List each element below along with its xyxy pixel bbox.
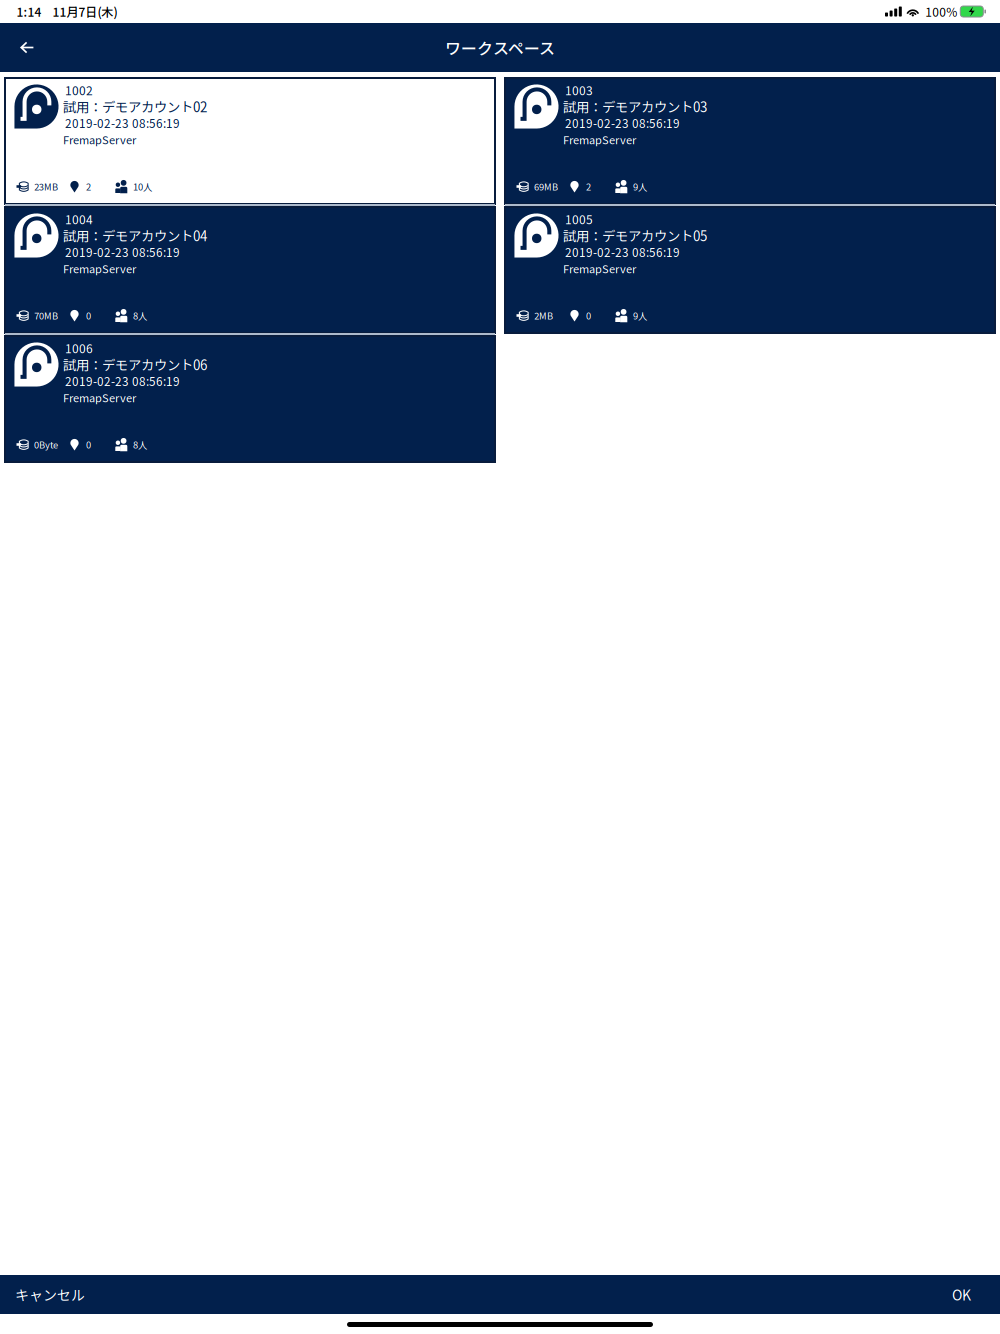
staticText: 0 [86,438,91,451]
staticText: FremapServer [563,260,636,276]
staticText: 1003 [565,81,593,99]
button[interactable]: Back [0,23,54,72]
staticText: 0Byte [34,438,58,451]
staticText: 試用：デモアカウント03 [563,97,707,116]
staticText: 2MB [534,309,553,322]
staticText: 23MB [34,180,58,193]
staticText: FremapServer [63,131,136,147]
staticText: 1006 [65,339,93,357]
staticText: 2019-02-23 08:56:19 [65,243,180,260]
button[interactable]: キャンセル [13,1274,87,1315]
staticText: 2019-02-23 08:56:19 [65,114,180,131]
staticText: 1005 [565,210,593,228]
staticText: 試用：デモアカウント02 [63,97,207,116]
staticText: 試用：デモアカウント06 [63,355,207,374]
staticText: 8人 [133,438,147,451]
staticText: 試用：デモアカウント05 [563,226,707,245]
staticText: ワークスペース [445,36,555,59]
staticText: 1004 [65,210,93,228]
staticText: 69MB [534,180,558,193]
staticText: 10人 [133,180,152,193]
button[interactable]: 1005 [505,207,995,333]
button[interactable]: 1004 [5,207,495,333]
staticText: 2019-02-23 08:56:19 [565,243,680,260]
staticText: 0 [86,309,91,322]
staticText: 100% [925,3,957,20]
staticText: 70MB [34,309,58,322]
staticText: FremapServer [563,131,636,147]
staticText: 試用：デモアカウント04 [63,226,207,245]
staticText: 9人 [633,309,647,322]
staticText: FremapServer [63,389,136,405]
staticText: 2 [86,180,91,193]
staticText: 9人 [633,180,647,193]
staticText: 1:14 [16,3,41,20]
button[interactable]: OK [950,1274,973,1315]
staticText: 2 [586,180,591,193]
button[interactable]: 1006 [5,336,495,462]
staticText: 0 [586,309,591,322]
staticText: OK [952,1284,971,1305]
button[interactable]: 1003 [505,78,995,204]
staticText: 11月7日(木) [52,3,117,20]
staticText: FremapServer [63,260,136,276]
staticText: キャンセル [15,1284,85,1305]
staticText: 8人 [133,309,147,322]
button[interactable]: 1002 [5,78,495,204]
staticText: 2019-02-23 08:56:19 [565,114,680,131]
staticText: 1002 [65,81,93,99]
staticText: 2019-02-23 08:56:19 [65,372,180,389]
